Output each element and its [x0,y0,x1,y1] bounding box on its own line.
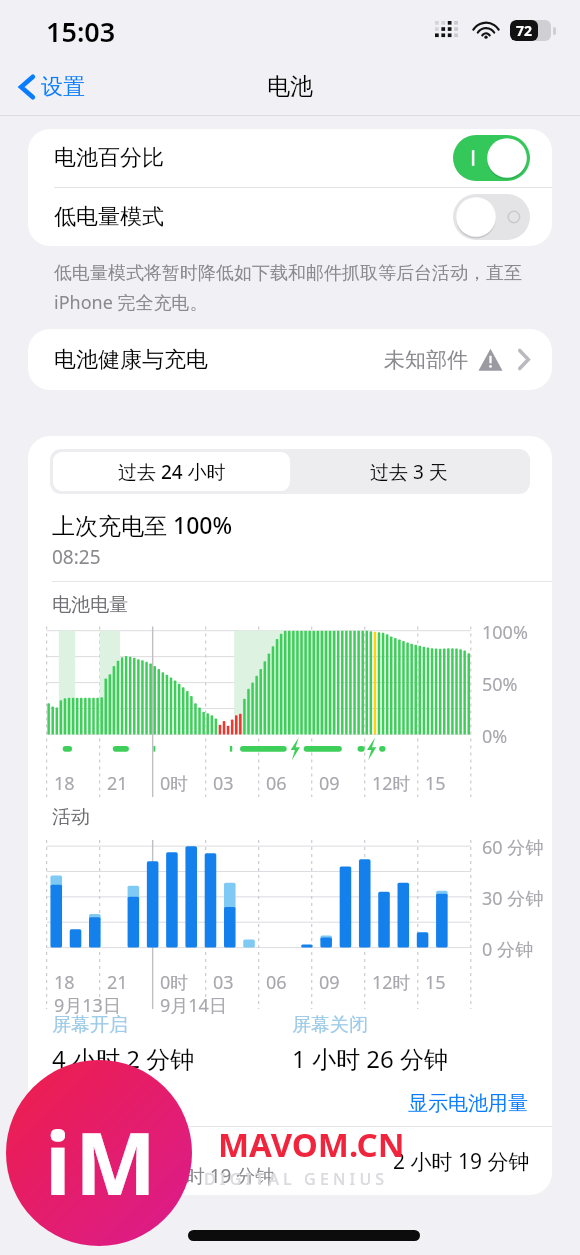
button[interactable]: 显示电池用量 [404,1087,532,1120]
staticText: 0时 [160,771,189,796]
button[interactable]: 荣耀 [28,1127,552,1195]
staticText: 荣耀 [108,1134,150,1160]
button[interactable]: Switch off [453,194,530,240]
staticText: D I G I T A L G E N I U S [204,1168,385,1190]
button[interactable]: Switch on [453,135,530,181]
staticText: 15 [425,970,446,995]
staticText: 低电量模式将暂时降低如下载和邮件抓取等后台活动，直至 [54,262,522,285]
staticText: 屏幕开启 [52,1013,128,1037]
staticText: 电池健康与充电 [54,346,384,374]
staticText: 1 小时 26 分钟 [292,1042,448,1075]
staticText: 电池电量 [52,593,128,617]
button[interactable]: 过去 24 小时 [53,452,290,491]
staticText: 06 [266,771,287,796]
staticText: 21 [107,771,128,796]
staticText: 低电量模式 [54,203,453,231]
staticText: 03 [213,970,234,995]
staticText: 活动 [52,805,90,829]
button[interactable]: 低电量模式 [28,188,552,246]
staticText: 03 [213,771,234,796]
staticText: 屏幕关闭 [292,1013,368,1037]
staticText: 电池百分比 [54,144,453,172]
staticText: 0 分钟 [482,937,533,962]
button[interactable]: 设置 [14,67,91,107]
staticText: 0时 [160,970,189,995]
staticText: 上次充电至 100% [52,509,233,540]
button[interactable]: 过去 3 天 [290,452,527,491]
staticText: 过去 24 小时 [118,459,226,485]
staticText: 18 [54,970,75,995]
staticText: 06 [266,970,287,995]
button[interactable]: 电池健康与充电 [28,329,552,390]
staticText: 9月13日 [54,993,121,1018]
staticText: 0% [482,724,508,749]
staticText: 过去 3 天 [370,459,448,485]
staticText: 08:25 [52,544,101,570]
staticText: 100% [482,620,528,645]
staticText: 12时 [372,970,411,995]
staticText: 15 [425,771,446,796]
staticText: 电池 [267,72,313,101]
staticText: i [45,1103,71,1220]
staticText: iPhone 完全充电。 [54,290,208,315]
staticText: 60 分钟 [482,835,544,860]
staticText: 30 分钟 [482,886,544,911]
staticText: 18 [54,771,75,796]
staticText: 12时 [372,771,411,796]
staticText: 21 [107,970,128,995]
staticText: 9月14日 [160,993,227,1018]
staticText: 15:03 [46,13,116,50]
staticText: 4 小时 2 分钟 [52,1042,195,1075]
staticText: 未知部件 [384,347,468,373]
staticText: 72 [516,21,533,40]
staticText: 09 [319,771,340,796]
staticText: 09 [319,970,340,995]
staticText: 设置 [41,73,85,101]
staticText: 前台 2 小时 19 分钟 [108,1163,275,1189]
staticText: M [75,1103,157,1220]
button[interactable]: 电池百分比 [28,129,552,187]
staticText: 50% [482,672,518,697]
staticText: MAVOM.CN [218,1122,405,1167]
staticText: 2 小时 19 分钟 [393,1147,530,1176]
